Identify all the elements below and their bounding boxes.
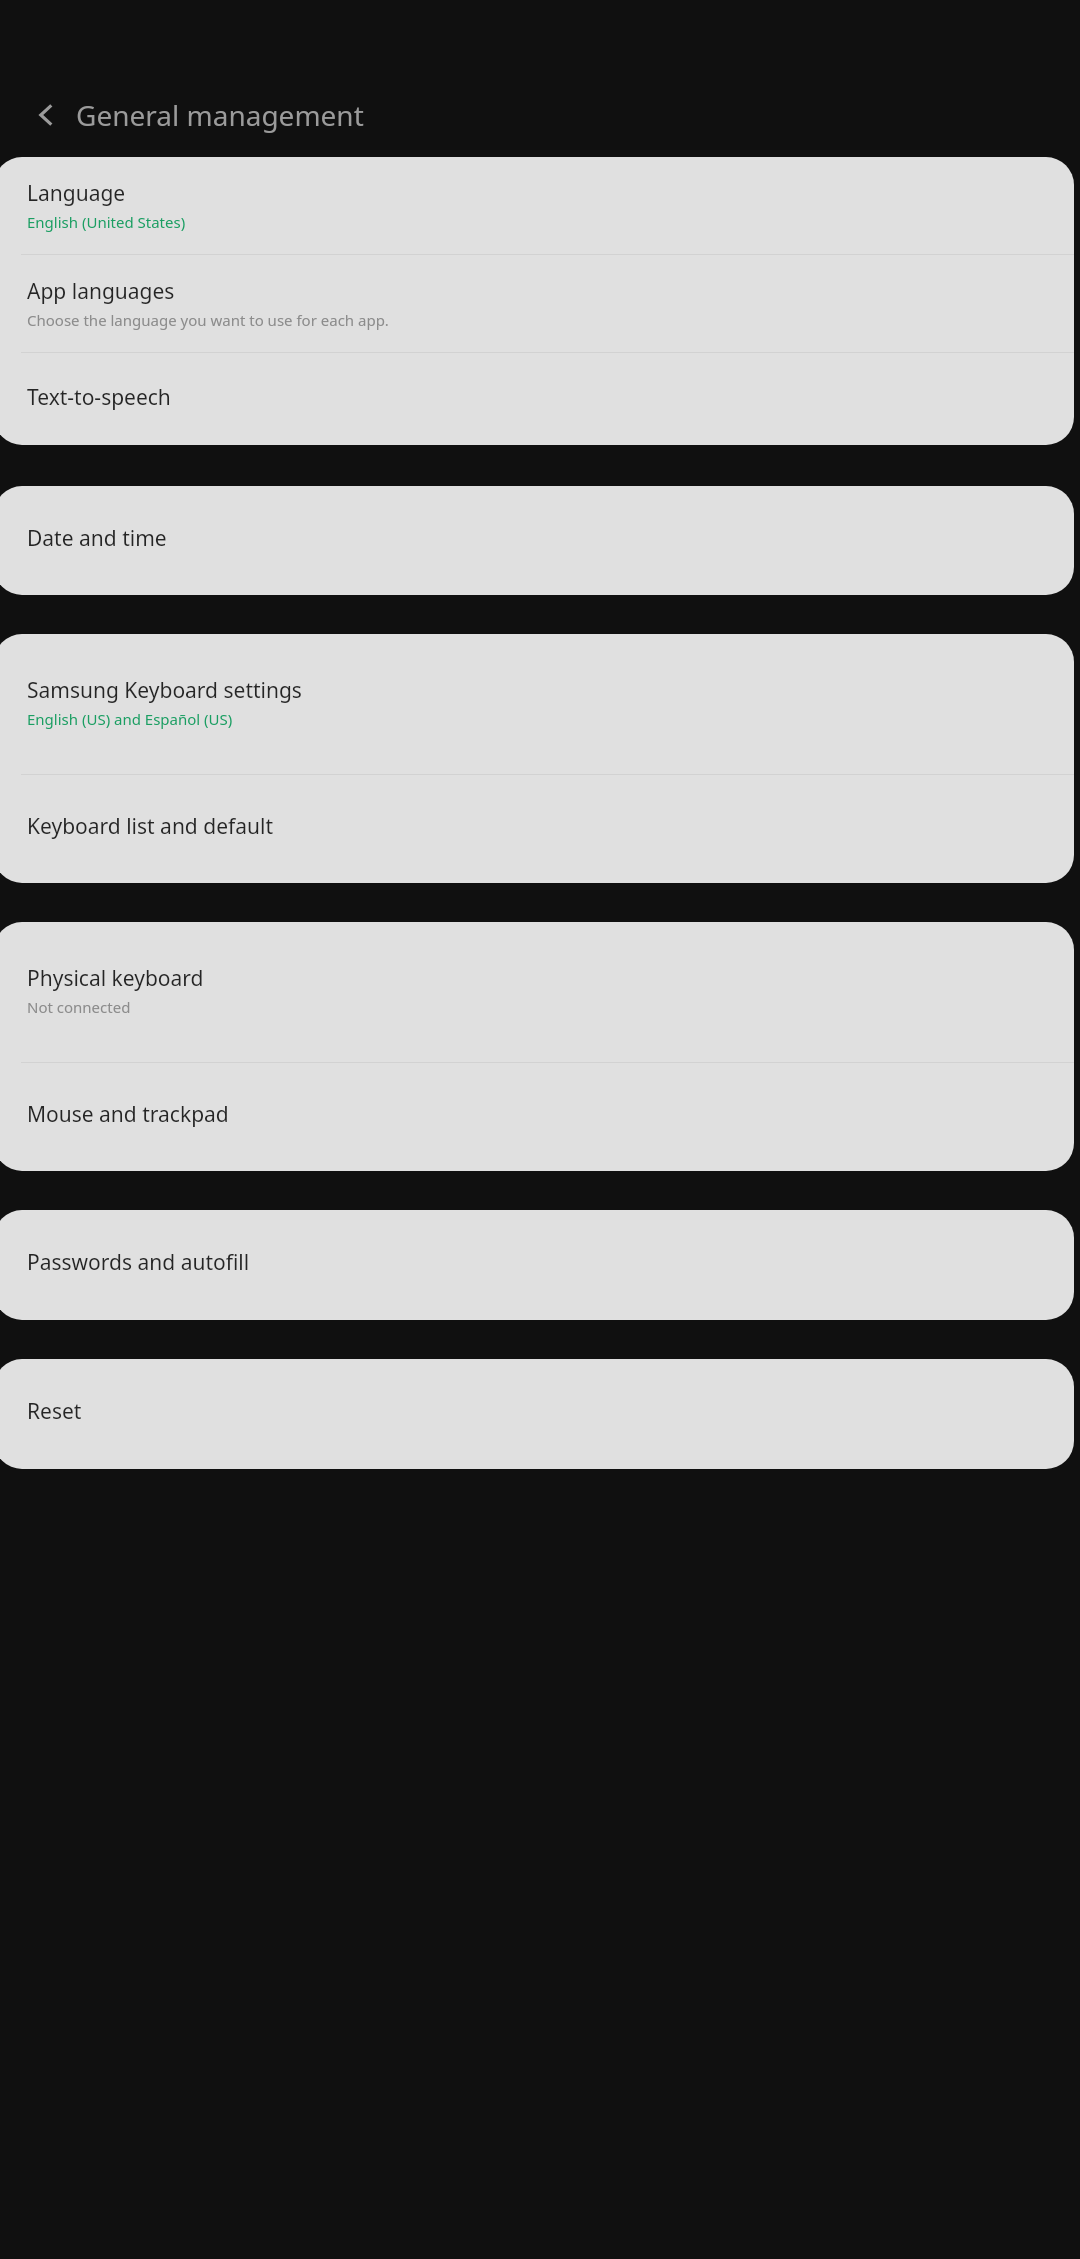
staticText: Not connected	[27, 997, 131, 1017]
staticText: English (United States)	[27, 212, 186, 232]
button[interactable]: Date and time	[0, 486, 1074, 595]
staticText: Choose the language you want to use for …	[27, 310, 389, 330]
staticText: App languages	[27, 277, 175, 306]
staticText: Date and time	[27, 524, 167, 553]
staticText: Keyboard list and default	[27, 812, 273, 841]
button[interactable]: App languages	[0, 255, 1074, 352]
button[interactable]: Language	[0, 157, 1074, 254]
button[interactable]: Back	[26, 95, 66, 135]
button[interactable]: Mouse and trackpad	[0, 1063, 1074, 1171]
staticText: Physical keyboard	[27, 964, 204, 993]
button[interactable]: Keyboard list and default	[0, 775, 1074, 883]
button[interactable]: Passwords and autofill	[0, 1210, 1074, 1320]
staticText: Samsung Keyboard settings	[27, 676, 302, 705]
staticText: General management	[76, 96, 364, 134]
button[interactable]: Samsung Keyboard settings	[0, 634, 1074, 774]
button[interactable]: Text-to-speech	[0, 353, 1074, 445]
button[interactable]: Reset	[0, 1359, 1074, 1469]
staticText: Text-to-speech	[27, 383, 171, 412]
staticText: Passwords and autofill	[27, 1248, 250, 1277]
staticText: Language	[27, 179, 126, 208]
staticText: Reset	[27, 1397, 82, 1426]
staticText: English (US) and Español (US)	[27, 709, 233, 729]
staticText: Mouse and trackpad	[27, 1100, 229, 1129]
button[interactable]: Physical keyboard	[0, 922, 1074, 1062]
